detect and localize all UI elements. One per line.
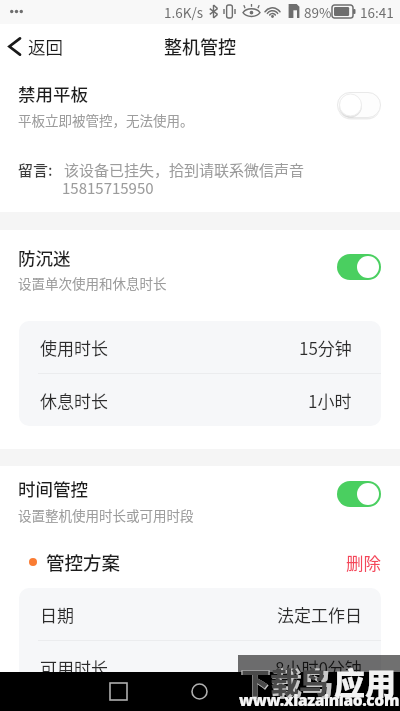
staticText: 可用时长 [40, 655, 275, 680]
staticText: 删除 [346, 550, 381, 575]
staticText: 时间管控 [18, 476, 88, 501]
button[interactable]: Switch off [337, 92, 381, 118]
staticText: 禁用平板 [18, 81, 88, 106]
staticText: 1小时 [308, 388, 352, 413]
button[interactable]: 使用时长 [19, 321, 381, 373]
staticText: 8小时0分钟 [275, 655, 362, 680]
staticText: 该设备已挂失，拾到请联系微信声音 [64, 159, 305, 181]
staticText: 返回 [28, 34, 63, 59]
staticText: 1.6K/s [164, 2, 204, 22]
button[interactable]: Recents [110, 683, 127, 700]
staticText: 整机管控 [164, 33, 236, 59]
staticText: 休息时长 [40, 388, 308, 413]
staticText: 管控方案 [46, 549, 346, 575]
button[interactable]: 返回 [0, 28, 73, 64]
button[interactable]: 管控方案 [0, 549, 400, 575]
button[interactable]: Switch on [337, 481, 381, 507]
staticText: 下载鸟 [241, 660, 329, 702]
staticText: 设置整机使用时长或可用时段 [18, 505, 194, 525]
staticText: 使用时长 [40, 335, 299, 360]
button[interactable]: Switch on [337, 254, 381, 280]
staticText: 下载鸟 [240, 659, 333, 704]
staticText: www.xiazainiao.com [239, 689, 400, 710]
button[interactable]: 日期 [19, 588, 381, 640]
staticText: 防沉迷 [18, 245, 71, 270]
staticText: 应用 [334, 659, 396, 704]
staticText: 日期 [40, 602, 277, 627]
staticText: 89% [304, 2, 332, 22]
staticText: 留言: [18, 159, 53, 181]
button[interactable]: 可用时长 [19, 641, 381, 693]
button[interactable]: Home [191, 683, 208, 700]
staticText: 15分钟 [299, 335, 352, 360]
staticText: 法定工作日 [277, 602, 362, 627]
button[interactable]: 休息时长 [19, 374, 381, 426]
staticText: 16:41 [360, 2, 394, 22]
staticText: 设置单次使用和休息时长 [18, 273, 167, 293]
staticText: 15815715950 [62, 177, 154, 199]
staticText: 平板立即被管控，无法使用。 [18, 110, 194, 130]
